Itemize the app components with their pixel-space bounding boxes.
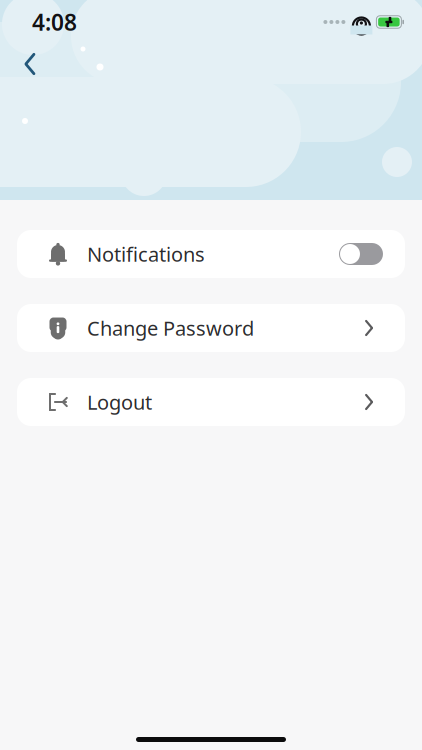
staticText: 4:08 bbox=[32, 7, 77, 37]
staticText: Logout bbox=[87, 389, 152, 415]
button[interactable]: Change Password bbox=[17, 304, 405, 352]
staticText: Change Password bbox=[87, 315, 254, 341]
button[interactable]: Logout bbox=[17, 378, 405, 426]
staticText: Notifications bbox=[87, 241, 205, 267]
button[interactable]: Back bbox=[8, 44, 52, 84]
button[interactable]: Notifications bbox=[17, 230, 405, 278]
